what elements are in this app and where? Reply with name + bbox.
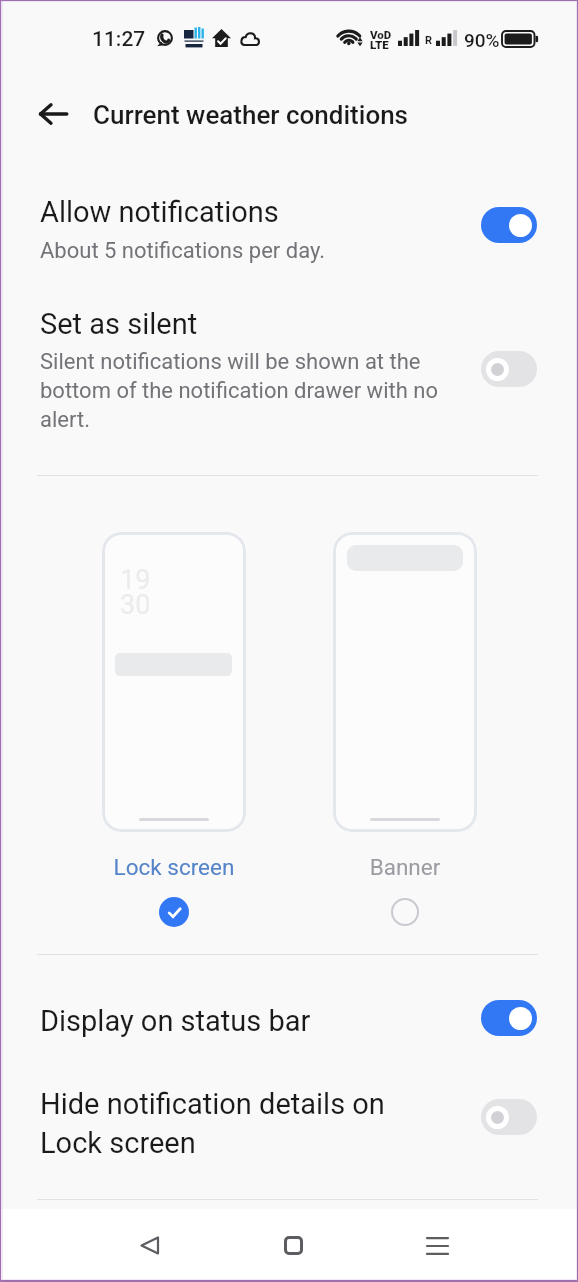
button[interactable]: Switch on <box>481 207 537 243</box>
button[interactable] <box>0 290 578 442</box>
button[interactable]: Back <box>27 90 79 138</box>
staticText: Lock screen <box>102 854 246 880</box>
staticText: R <box>425 34 433 47</box>
button[interactable] <box>102 532 246 927</box>
button[interactable]: Recent apps <box>365 1209 509 1282</box>
staticText: Allow notifications <box>40 195 480 229</box>
button[interactable]: Home <box>221 1209 365 1282</box>
other: Lock screen selected <box>159 897 189 927</box>
staticText: 90% <box>464 29 500 51</box>
staticText: 19 30 <box>120 564 151 620</box>
staticText: Silent notifications will be shown at th… <box>40 349 470 432</box>
staticText: Current weather conditions <box>93 100 408 130</box>
other: Banner not selected <box>391 898 419 926</box>
button[interactable]: Back <box>77 1209 221 1282</box>
staticText: Display on status bar <box>40 1004 480 1038</box>
staticText: 11:27 <box>92 27 146 52</box>
button[interactable] <box>0 178 578 276</box>
button[interactable] <box>333 532 477 927</box>
staticText: Banner <box>333 854 477 880</box>
button[interactable]: Switch off <box>481 351 537 387</box>
button[interactable] <box>0 1066 578 1168</box>
staticText: VoD <box>370 28 392 41</box>
button[interactable] <box>0 982 578 1056</box>
staticText: About 5 notifications per day. <box>40 238 470 264</box>
staticText: Hide notification details on Lock screen <box>40 1087 480 1160</box>
button[interactable]: Switch off <box>481 1099 537 1135</box>
button[interactable]: Switch on <box>481 1000 537 1036</box>
staticText: Set as silent <box>40 307 480 341</box>
staticText: LTE <box>370 38 389 51</box>
